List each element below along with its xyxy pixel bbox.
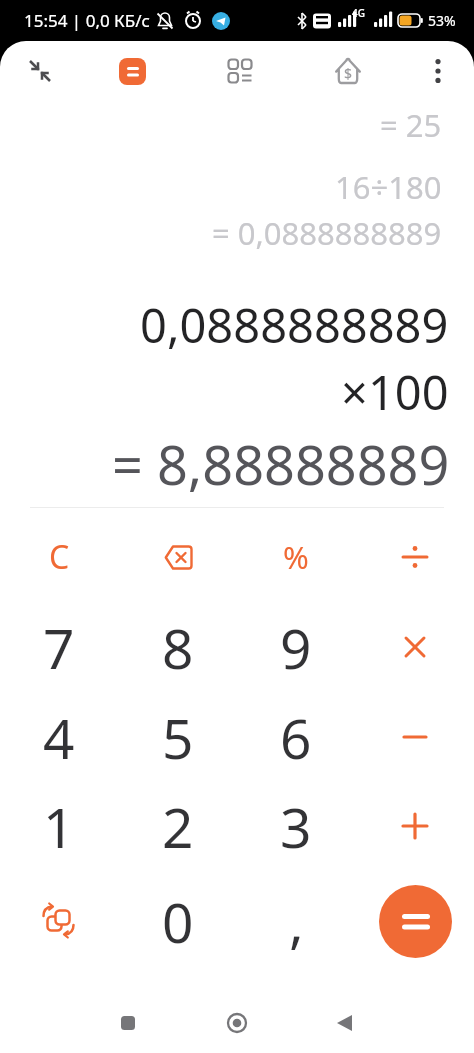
staticText: 16÷180 — [335, 166, 442, 208]
staticText: = 25 — [380, 104, 442, 146]
staticText: 3 — [280, 789, 312, 864]
staticText: $ — [344, 64, 353, 83]
staticText: 15:54 | 0,0 КБ/с — [24, 9, 150, 32]
button[interactable]: 6 — [242, 693, 350, 781]
staticText: 4G — [352, 6, 365, 20]
button[interactable]: 8 — [124, 603, 232, 691]
button[interactable] — [361, 693, 469, 781]
button[interactable]: $ — [324, 47, 372, 95]
button[interactable] — [361, 782, 469, 870]
button[interactable] — [379, 885, 452, 958]
staticText: , — [289, 884, 304, 959]
button[interactable]: 5 — [124, 693, 232, 781]
button[interactable]: 0 — [124, 877, 232, 965]
button[interactable] — [5, 877, 113, 965]
staticText: 7 — [43, 610, 75, 685]
staticText: 9 — [280, 610, 312, 685]
button[interactable] — [320, 999, 368, 1047]
button[interactable]: 1 — [5, 782, 113, 870]
button[interactable] — [361, 603, 469, 691]
staticText: 0,0888888889 — [140, 293, 449, 357]
button[interactable]: , — [242, 877, 350, 965]
staticText: = 8,88888889 — [112, 427, 450, 495]
button[interactable] — [216, 47, 264, 95]
button[interactable] — [124, 513, 232, 601]
staticText: 2 — [162, 789, 194, 864]
button[interactable]: 3 — [242, 782, 350, 870]
staticText: % — [283, 536, 309, 578]
staticText: 0 — [162, 884, 194, 959]
staticText: 5 — [162, 700, 194, 775]
staticText: ×100 — [341, 360, 449, 424]
button[interactable]: C — [5, 513, 113, 601]
button[interactable] — [213, 999, 261, 1047]
staticText: 1 — [43, 789, 75, 864]
staticText: 8 — [162, 610, 194, 685]
button[interactable] — [108, 47, 156, 95]
button[interactable]: 7 — [5, 603, 113, 691]
button[interactable]: 9 — [242, 603, 350, 691]
staticText: 53% — [428, 11, 456, 30]
button[interactable] — [414, 47, 462, 95]
button[interactable] — [361, 513, 469, 601]
staticText: 6 — [280, 700, 312, 775]
button[interactable] — [104, 999, 152, 1047]
button[interactable] — [16, 47, 64, 95]
staticText: = 0,0888888889 — [212, 212, 442, 254]
button[interactable]: 4 — [5, 693, 113, 781]
staticText: 4 — [43, 700, 75, 775]
button[interactable]: % — [242, 513, 350, 601]
button[interactable]: 2 — [124, 782, 232, 870]
staticText: C — [49, 535, 70, 579]
